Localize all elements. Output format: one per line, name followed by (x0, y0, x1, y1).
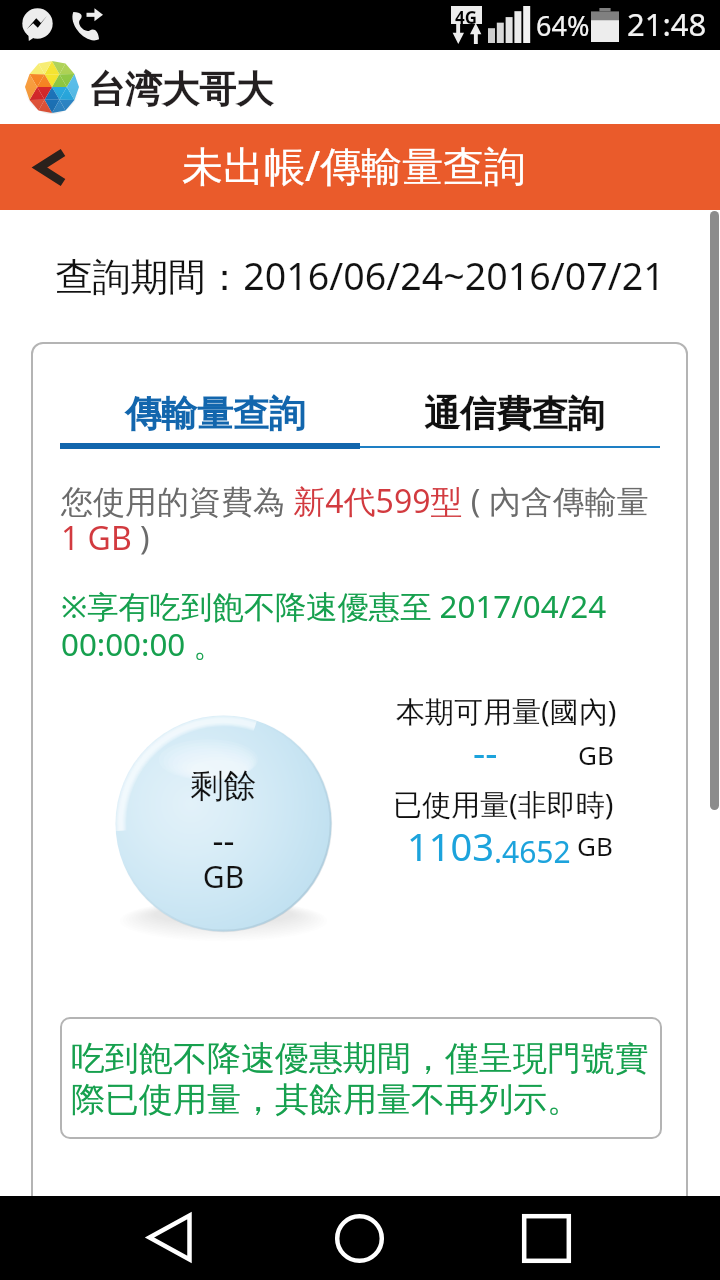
staticText: 查詢期間：2016/06/24~2016/07/21 (0, 250, 720, 301)
staticText: 1103 (407, 820, 494, 872)
button[interactable]: Recent apps (490, 1196, 606, 1280)
staticText: 通信費查詢 (424, 391, 604, 436)
staticText: -- (473, 726, 498, 778)
staticText: .4652 (494, 831, 571, 872)
staticText: ※享有吃到飽不降速優惠至 2017/04/24 00:00:00 。 (61, 585, 651, 666)
staticText: GB (98, 856, 349, 897)
staticText: 您使用的資費為 新4代599型 ( 內含傳輸量 1 GB ) (61, 479, 661, 560)
button[interactable]: 傳輸量查詢 (65, 383, 364, 443)
staticText: 4G (455, 6, 478, 24)
staticText: 已使用量(非即時) (393, 784, 614, 824)
staticText: -- (98, 817, 349, 863)
button[interactable]: Home (300, 1196, 416, 1280)
staticText: 剩餘 (98, 765, 349, 807)
staticText: GB (577, 828, 613, 863)
staticText: 64% (536, 7, 590, 44)
staticText: 台湾大哥大 (88, 66, 273, 113)
staticText: 未出帳/傳輸量查詢 (182, 137, 526, 193)
button[interactable]: Back (0, 124, 100, 210)
staticText: 傳輸量查詢 (125, 391, 305, 436)
button[interactable]: 通信費查詢 (364, 383, 664, 443)
staticText: GB (578, 737, 614, 772)
staticText: 吃到飽不降速優惠期間，僅呈現門號實 際已使用量，其餘用量不再列示。 (71, 1037, 649, 1121)
staticText: 本期可用量(國內) (396, 691, 617, 731)
button[interactable]: Back (112, 1196, 228, 1280)
staticText: 21:48 (627, 3, 707, 45)
